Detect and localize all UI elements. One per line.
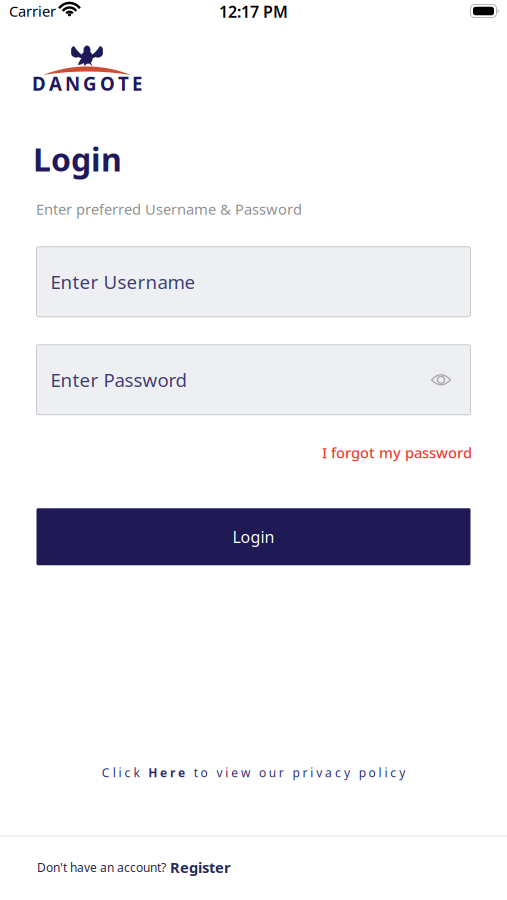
staticText: H [148,765,157,780]
staticText: l [378,765,381,780]
staticText: i [225,765,228,780]
button[interactable]: Enter Password [36,345,470,415]
staticText: N [65,71,80,96]
staticText: 12:17 PM [219,1,288,22]
staticText: O [100,71,115,96]
staticText: t [194,765,198,780]
staticText: e [178,765,185,780]
staticText: Enter preferred Username & Password [36,199,302,219]
staticText: E [132,71,142,96]
staticText: a [325,765,332,780]
staticText: u [269,765,276,780]
staticText: v [316,765,322,780]
staticText: i [384,765,387,780]
staticText: r [302,765,307,780]
staticText: e [231,765,238,780]
staticText: r [170,765,175,780]
staticText: I forgot my password [322,443,472,462]
staticText: e [160,765,167,780]
staticText: o [201,765,208,780]
staticText: v [216,765,222,780]
staticText: c [335,765,341,780]
button[interactable]: Login [36,508,470,565]
staticText: r [279,765,284,780]
staticText: c [390,765,396,780]
staticText: o [259,765,266,780]
staticText: c [124,765,130,780]
button[interactable]: I forgot my password [322,443,472,462]
staticText: i [310,765,313,780]
staticText: Login [33,138,122,180]
staticText: T [118,71,129,96]
staticText: Don't have an account? [37,859,166,875]
staticText: Enter Username [50,269,195,294]
staticText: p [359,765,366,780]
staticText: l [113,765,116,780]
staticText: k [133,765,139,780]
staticText: G [83,71,97,96]
staticText: C [102,765,110,780]
button[interactable]: C [102,765,405,780]
staticText: i [119,765,122,780]
staticText: A [49,71,62,96]
staticText: D [32,71,46,96]
staticText: Login [232,526,274,547]
staticText: y [344,765,350,780]
staticText: Carrier [9,1,56,21]
staticText: Enter Password [50,367,186,392]
button[interactable]: Show password [431,374,470,385]
button[interactable]: Enter Username [36,247,470,317]
staticText: o [369,765,376,780]
staticText: Register [170,857,231,877]
button[interactable]: Register [170,857,231,877]
staticText: y [399,765,405,780]
staticText: w [241,765,250,780]
staticText: p [292,765,299,780]
